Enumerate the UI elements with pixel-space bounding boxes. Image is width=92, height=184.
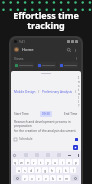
- button[interactable]: Views: [14, 54, 78, 62]
- staticText: m: [65, 176, 69, 181]
- staticText: n: [59, 176, 62, 181]
- button[interactable]: v: [43, 175, 49, 181]
- button[interactable]: c: [36, 175, 42, 181]
- staticText: v: [45, 176, 47, 181]
- button[interactable]: o: [66, 159, 72, 165]
- staticText: g: [44, 168, 47, 173]
- staticText: /: [75, 90, 77, 94]
- staticText: q: [14, 160, 17, 165]
- button[interactable]: x: [29, 175, 35, 181]
- button[interactable]: More options: [72, 47, 78, 53]
- button[interactable]: f: [35, 167, 41, 173]
- staticText: i: [62, 160, 63, 165]
- staticText: d: [30, 168, 33, 173]
- button[interactable]: y: [45, 159, 51, 165]
- staticText: h: [51, 168, 54, 173]
- staticText: Start Time: [14, 112, 29, 116]
- staticText: f: [37, 168, 39, 173]
- staticText: Home: [22, 47, 34, 52]
- staticText: r: [33, 160, 35, 165]
- button[interactable]: k: [63, 167, 69, 173]
- staticText: c: [38, 176, 40, 181]
- staticText: a: [18, 168, 20, 173]
- button[interactable]: [15, 62, 33, 68]
- button[interactable]: g: [42, 167, 48, 173]
- button[interactable]: h: [49, 167, 55, 173]
- button[interactable]: Search: [65, 46, 72, 53]
- button[interactable]: n: [57, 175, 63, 181]
- button[interactable]: t: [38, 159, 44, 165]
- staticText: j: [59, 168, 60, 173]
- button[interactable]: [38, 62, 55, 68]
- staticText: y: [47, 160, 49, 165]
- staticText: x: [31, 176, 33, 181]
- button[interactable]: Shift: [13, 175, 21, 181]
- staticText: /: [38, 90, 40, 94]
- staticText: End Time: [64, 112, 78, 116]
- button[interactable]: d: [28, 167, 34, 173]
- button[interactable]: Backspace: [71, 175, 79, 181]
- staticText: l: [73, 168, 74, 173]
- button[interactable]: l: [70, 167, 76, 173]
- button[interactable]: 09:30: [42, 112, 50, 116]
- button[interactable]: e: [25, 159, 30, 165]
- staticText: Research and development process in prep…: [14, 120, 78, 128]
- button[interactable]: z: [22, 175, 28, 181]
- staticText: for the creation of the analysis documen…: [14, 129, 77, 133]
- button[interactable]: p: [73, 159, 79, 165]
- staticText: 09:30: [42, 112, 50, 116]
- button[interactable]: m: [64, 175, 70, 181]
- staticText: Effortless time tracking: [6, 9, 86, 31]
- button[interactable]: r: [31, 159, 37, 165]
- staticText: Schedule: [19, 137, 33, 141]
- button[interactable]: q: [13, 159, 18, 165]
- staticText: w: [20, 160, 23, 165]
- staticText: e: [27, 160, 29, 165]
- staticText: k: [65, 168, 67, 173]
- button[interactable]: Send: [73, 145, 78, 150]
- button[interactable]: a: [16, 167, 21, 173]
- staticText: t: [40, 160, 42, 165]
- staticText: 9:41: [19, 40, 25, 44]
- button[interactable]: Emoji: [13, 154, 16, 157]
- button[interactable]: b: [50, 175, 56, 181]
- staticText: p: [75, 160, 78, 165]
- staticText: Mobile Design: [14, 90, 36, 94]
- staticText: o: [68, 160, 71, 165]
- staticText: z: [24, 176, 26, 181]
- button[interactable]: u: [52, 159, 58, 165]
- button[interactable]: s: [22, 167, 27, 173]
- staticText: Views: [14, 56, 24, 61]
- button[interactable]: i: [59, 159, 65, 165]
- staticText: b: [52, 176, 55, 181]
- button[interactable]: Home: [14, 45, 78, 54]
- button[interactable]: [60, 62, 77, 68]
- button[interactable]: j: [56, 167, 62, 173]
- staticText: s: [24, 168, 26, 173]
- staticText: u: [54, 160, 57, 165]
- button[interactable]: w: [19, 159, 24, 165]
- staticText: Preliminary Analysis: [42, 90, 73, 94]
